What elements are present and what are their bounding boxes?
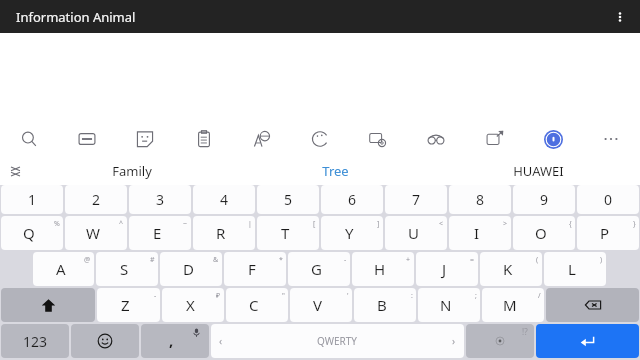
button[interactable]: Stickers bbox=[130, 124, 160, 154]
staticText: F bbox=[248, 259, 256, 279]
staticText: 8 bbox=[476, 190, 485, 209]
button[interactable]: W bbox=[65, 216, 127, 250]
button[interactable]: 4 bbox=[193, 185, 255, 214]
button[interactable]: Space bbox=[211, 324, 464, 358]
button[interactable]: Incognito bbox=[421, 124, 451, 154]
button[interactable]: 2 bbox=[65, 185, 127, 214]
button[interactable]: C bbox=[226, 288, 288, 322]
staticText: < bbox=[439, 219, 444, 229]
button[interactable]: Comma, voice input bbox=[141, 324, 209, 358]
staticText: N bbox=[440, 295, 452, 315]
button[interactable]: 0 bbox=[577, 185, 639, 214]
button[interactable]: Collapse suggestions bbox=[0, 157, 30, 185]
button[interactable]: Clipboard bbox=[189, 124, 219, 154]
button[interactable]: 9 bbox=[513, 185, 575, 214]
button[interactable]: 123 bbox=[1, 324, 69, 358]
button[interactable]: GIF bbox=[72, 124, 102, 154]
button[interactable]: L bbox=[544, 252, 606, 286]
button[interactable]: M bbox=[482, 288, 544, 322]
button[interactable]: 5 bbox=[257, 185, 319, 214]
staticText: U bbox=[408, 223, 419, 243]
button[interactable]: F bbox=[224, 252, 286, 286]
staticText: ‹ bbox=[219, 334, 223, 348]
staticText: K bbox=[503, 259, 513, 279]
button[interactable]: Period bbox=[466, 324, 534, 358]
button[interactable]: B bbox=[354, 288, 416, 322]
button[interactable]: 8 bbox=[449, 185, 511, 214]
staticText: [ bbox=[313, 219, 316, 229]
staticText: P bbox=[600, 223, 610, 243]
staticText: Family bbox=[112, 162, 152, 180]
button[interactable]: Enter bbox=[536, 324, 639, 358]
staticText: O bbox=[535, 223, 547, 243]
button[interactable]: Themes bbox=[305, 124, 335, 154]
staticText: { bbox=[569, 219, 572, 229]
button[interactable]: U bbox=[385, 216, 447, 250]
staticText: 0 bbox=[604, 190, 613, 209]
button[interactable]: 7 bbox=[385, 185, 447, 214]
button[interactable]: More options bbox=[600, 0, 640, 33]
button[interactable]: 1 bbox=[1, 185, 63, 214]
button[interactable]: K bbox=[480, 252, 542, 286]
staticText: HUAWEI bbox=[513, 162, 564, 180]
button[interactable]: G bbox=[288, 252, 350, 286]
button[interactable]: I bbox=[449, 216, 511, 250]
button[interactable]: P bbox=[577, 216, 639, 250]
staticText: I bbox=[474, 223, 480, 243]
staticText: > bbox=[503, 219, 508, 229]
staticText: 2 bbox=[92, 190, 101, 209]
button[interactable]: Shift bbox=[1, 288, 95, 322]
button[interactable]: Translate bbox=[247, 124, 277, 154]
button[interactable]: Emoji bbox=[71, 324, 139, 358]
staticText: | bbox=[248, 219, 252, 229]
staticText: Y bbox=[345, 223, 354, 243]
staticText: R bbox=[216, 223, 226, 243]
button[interactable]: O bbox=[513, 216, 575, 250]
button[interactable]: V bbox=[290, 288, 352, 322]
staticText: * bbox=[279, 255, 283, 265]
button[interactable]: Tree bbox=[234, 157, 437, 185]
staticText: 6 bbox=[348, 190, 357, 209]
staticText: ) bbox=[600, 255, 603, 265]
staticText: A bbox=[56, 259, 66, 279]
staticText: : bbox=[411, 291, 413, 301]
button[interactable]: 6 bbox=[321, 185, 383, 214]
staticText: W bbox=[86, 223, 100, 243]
button[interactable]: A bbox=[33, 252, 94, 286]
button[interactable]: HUAWEI bbox=[437, 157, 640, 185]
button[interactable]: S bbox=[96, 252, 158, 286]
staticText: 5 bbox=[284, 190, 293, 209]
button[interactable]: Y bbox=[321, 216, 383, 250]
staticText: - bbox=[154, 291, 157, 301]
button[interactable]: R bbox=[193, 216, 255, 250]
button[interactable]: Backspace bbox=[546, 288, 639, 322]
staticText: D bbox=[183, 259, 194, 279]
staticText: V bbox=[313, 295, 323, 315]
button[interactable]: More bbox=[596, 124, 626, 154]
button[interactable]: Keyboard settings bbox=[363, 124, 393, 154]
button[interactable]: Family bbox=[30, 157, 234, 185]
staticText: ₽ bbox=[216, 291, 221, 301]
staticText: ( bbox=[536, 255, 539, 265]
button[interactable]: Search bbox=[14, 124, 44, 154]
button[interactable]: 3 bbox=[129, 185, 191, 214]
staticText: B bbox=[377, 295, 387, 315]
button[interactable]: Resize keyboard bbox=[480, 124, 510, 154]
button[interactable]: H bbox=[352, 252, 414, 286]
button[interactable]: Z bbox=[97, 288, 160, 322]
button[interactable]: D bbox=[160, 252, 222, 286]
staticText: X bbox=[186, 295, 195, 315]
button[interactable]: N bbox=[418, 288, 480, 322]
button[interactable]: T bbox=[257, 216, 319, 250]
staticText: › bbox=[452, 334, 456, 348]
staticText: # bbox=[150, 255, 155, 265]
staticText: 123 bbox=[23, 332, 48, 351]
button[interactable]: Voice input bbox=[538, 124, 568, 154]
button[interactable]: X bbox=[162, 288, 224, 322]
staticText: E bbox=[153, 223, 162, 243]
button[interactable]: Q bbox=[1, 216, 63, 250]
button[interactable]: E bbox=[129, 216, 191, 250]
button[interactable]: J bbox=[416, 252, 478, 286]
staticText: 4 bbox=[220, 190, 229, 209]
staticText: S bbox=[120, 259, 129, 279]
